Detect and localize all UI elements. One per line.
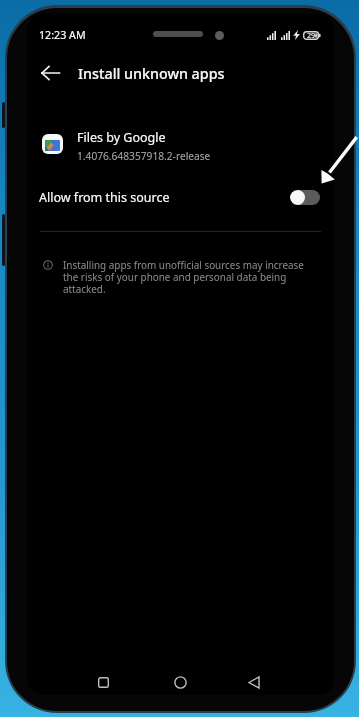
button[interactable]: Back [234,668,274,695]
button[interactable]: Home [160,668,200,695]
staticText: 12:23 AM [39,28,86,43]
button[interactable]: Back [30,53,70,93]
staticText: Files by Google [77,129,166,146]
button[interactable]: Files by Google [27,118,334,170]
button[interactable]: Recents [83,668,123,695]
staticText: 1.4076.648357918.2-release [77,149,211,163]
staticText: Installing apps from unofficial sources … [63,258,310,295]
staticText: Allow from this source [39,189,170,206]
staticText: Install unknown apps [78,64,225,83]
staticText: 29 [307,30,316,40]
button[interactable]: Allow from this source [27,174,334,220]
